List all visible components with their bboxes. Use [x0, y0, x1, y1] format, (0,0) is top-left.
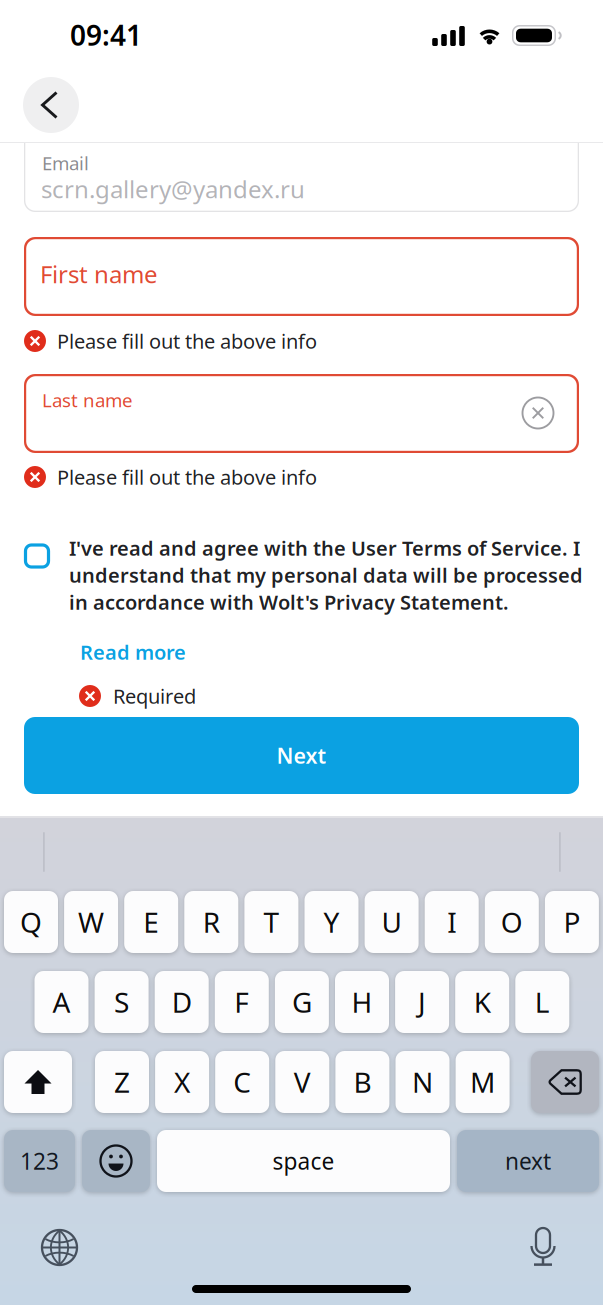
staticText: space	[272, 1146, 334, 1176]
button[interactable]: A	[34, 971, 88, 1033]
staticText: First name	[40, 258, 158, 290]
staticText: next	[505, 1146, 551, 1176]
staticText: Next	[276, 741, 326, 770]
staticText: J	[418, 983, 426, 1021]
button[interactable]: R	[184, 891, 238, 953]
staticText: S	[114, 983, 129, 1021]
button[interactable]: S	[95, 971, 149, 1033]
button[interactable]: Switch keyboard	[42, 1230, 77, 1265]
button[interactable]: P	[545, 891, 599, 953]
staticText: Y	[323, 903, 339, 941]
button[interactable]: Agree to the User Terms of Service	[15, 534, 59, 578]
button[interactable]: J	[395, 971, 449, 1033]
button[interactable]: I	[425, 891, 479, 953]
staticText: understand that my personal data will be…	[69, 562, 583, 588]
staticText: D	[172, 983, 192, 1021]
staticText: I've read and agree with the User Terms …	[69, 535, 580, 561]
button[interactable]: K	[455, 971, 509, 1033]
button[interactable]: M	[456, 1051, 510, 1113]
staticText: Email	[42, 151, 89, 175]
button[interactable]: H	[335, 971, 389, 1033]
staticText: O	[501, 903, 523, 941]
staticText: I	[447, 903, 456, 941]
button[interactable]: T	[244, 891, 298, 953]
button[interactable]: Next	[24, 717, 579, 794]
staticText: 09:41	[70, 16, 142, 54]
staticText: Last name	[42, 388, 133, 412]
button[interactable]: W	[64, 891, 118, 953]
staticText: Z	[114, 1063, 130, 1101]
button[interactable]: Shift	[4, 1051, 72, 1113]
staticText: N	[412, 1063, 433, 1101]
button[interactable]: next	[457, 1130, 599, 1192]
button[interactable]: U	[365, 891, 419, 953]
staticText: P	[563, 903, 580, 941]
staticText: F	[234, 983, 249, 1021]
staticText: Q	[20, 903, 42, 941]
staticText: in accordance with Wolt's Privacy Statem…	[69, 589, 509, 615]
button[interactable]: Clear text	[511, 386, 565, 440]
button[interactable]: Z	[95, 1051, 149, 1113]
button[interactable]: space	[157, 1130, 450, 1192]
staticText: Required	[113, 683, 196, 709]
button[interactable]: E	[124, 891, 178, 953]
staticText: A	[52, 983, 70, 1021]
staticText: T	[263, 903, 279, 941]
staticText: B	[353, 1063, 371, 1101]
button[interactable]: Delete	[531, 1051, 599, 1113]
staticText: scrn.gallery@yandex.ru	[41, 173, 305, 205]
button[interactable]: X	[155, 1051, 209, 1113]
staticText: W	[78, 903, 104, 941]
button[interactable]: Back	[23, 77, 79, 133]
button[interactable]: Emoji	[82, 1130, 150, 1192]
button[interactable]: O	[485, 891, 539, 953]
button[interactable]: L	[515, 971, 569, 1033]
button[interactable]: G	[275, 971, 329, 1033]
staticText: K	[474, 983, 491, 1021]
button[interactable]: V	[275, 1051, 329, 1113]
button[interactable]: C	[215, 1051, 269, 1113]
button[interactable]: Read more	[80, 639, 190, 665]
button[interactable]: Y	[304, 891, 358, 953]
button[interactable]: Dictate	[530, 1228, 556, 1266]
staticText: G	[292, 983, 312, 1021]
button[interactable]: F	[215, 971, 269, 1033]
button[interactable]: D	[155, 971, 209, 1033]
staticText: Please fill out the above info	[57, 328, 317, 354]
staticText: C	[233, 1063, 251, 1101]
staticText: R	[203, 903, 220, 941]
button[interactable]: Q	[4, 891, 58, 953]
staticText: Read more	[80, 639, 186, 665]
staticText: E	[143, 903, 159, 941]
staticText: M	[470, 1063, 495, 1101]
button[interactable]: N	[395, 1051, 449, 1113]
staticText: L	[535, 983, 550, 1021]
button[interactable]: B	[335, 1051, 389, 1113]
staticText: 123	[20, 1146, 59, 1176]
staticText: V	[294, 1063, 311, 1101]
staticText: Please fill out the above info	[57, 464, 317, 490]
button[interactable]: 123	[4, 1130, 75, 1192]
staticText: X	[174, 1063, 190, 1101]
staticText: H	[351, 983, 372, 1021]
staticText: U	[382, 903, 402, 941]
